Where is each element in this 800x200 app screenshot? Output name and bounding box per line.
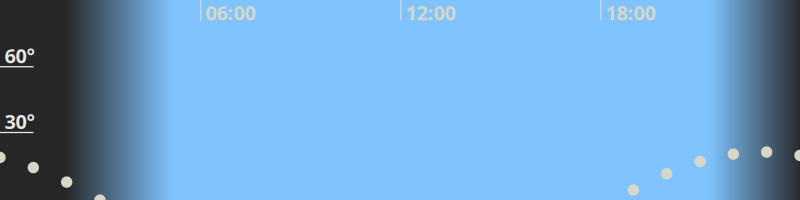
- staticText: 18:00: [605, 0, 655, 26]
- button[interactable]: Sun elevation chart: [0, 0, 800, 200]
- staticText: 60°: [4, 42, 34, 69]
- staticText: 12:00: [405, 0, 455, 26]
- staticText: 06:00: [205, 0, 255, 26]
- staticText: 30°: [4, 108, 34, 134]
